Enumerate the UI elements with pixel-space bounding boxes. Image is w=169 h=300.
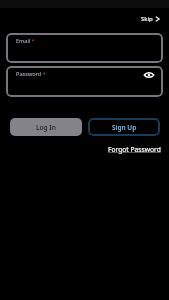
button[interactable]: Password * xyxy=(6,66,163,97)
staticText: Email * xyxy=(16,37,35,45)
button[interactable]: Show password xyxy=(143,69,154,80)
button[interactable]: Sign Up xyxy=(88,118,160,136)
staticText: Skip xyxy=(141,15,153,23)
button[interactable]: Email * xyxy=(6,33,163,63)
staticText: Log In xyxy=(36,123,56,132)
staticText: Password * xyxy=(16,70,46,78)
staticText: Sign Up xyxy=(112,123,137,132)
button[interactable]: Skip xyxy=(141,15,160,23)
button[interactable]: Log In xyxy=(10,118,82,136)
button[interactable]: Forgot Password xyxy=(108,145,161,154)
